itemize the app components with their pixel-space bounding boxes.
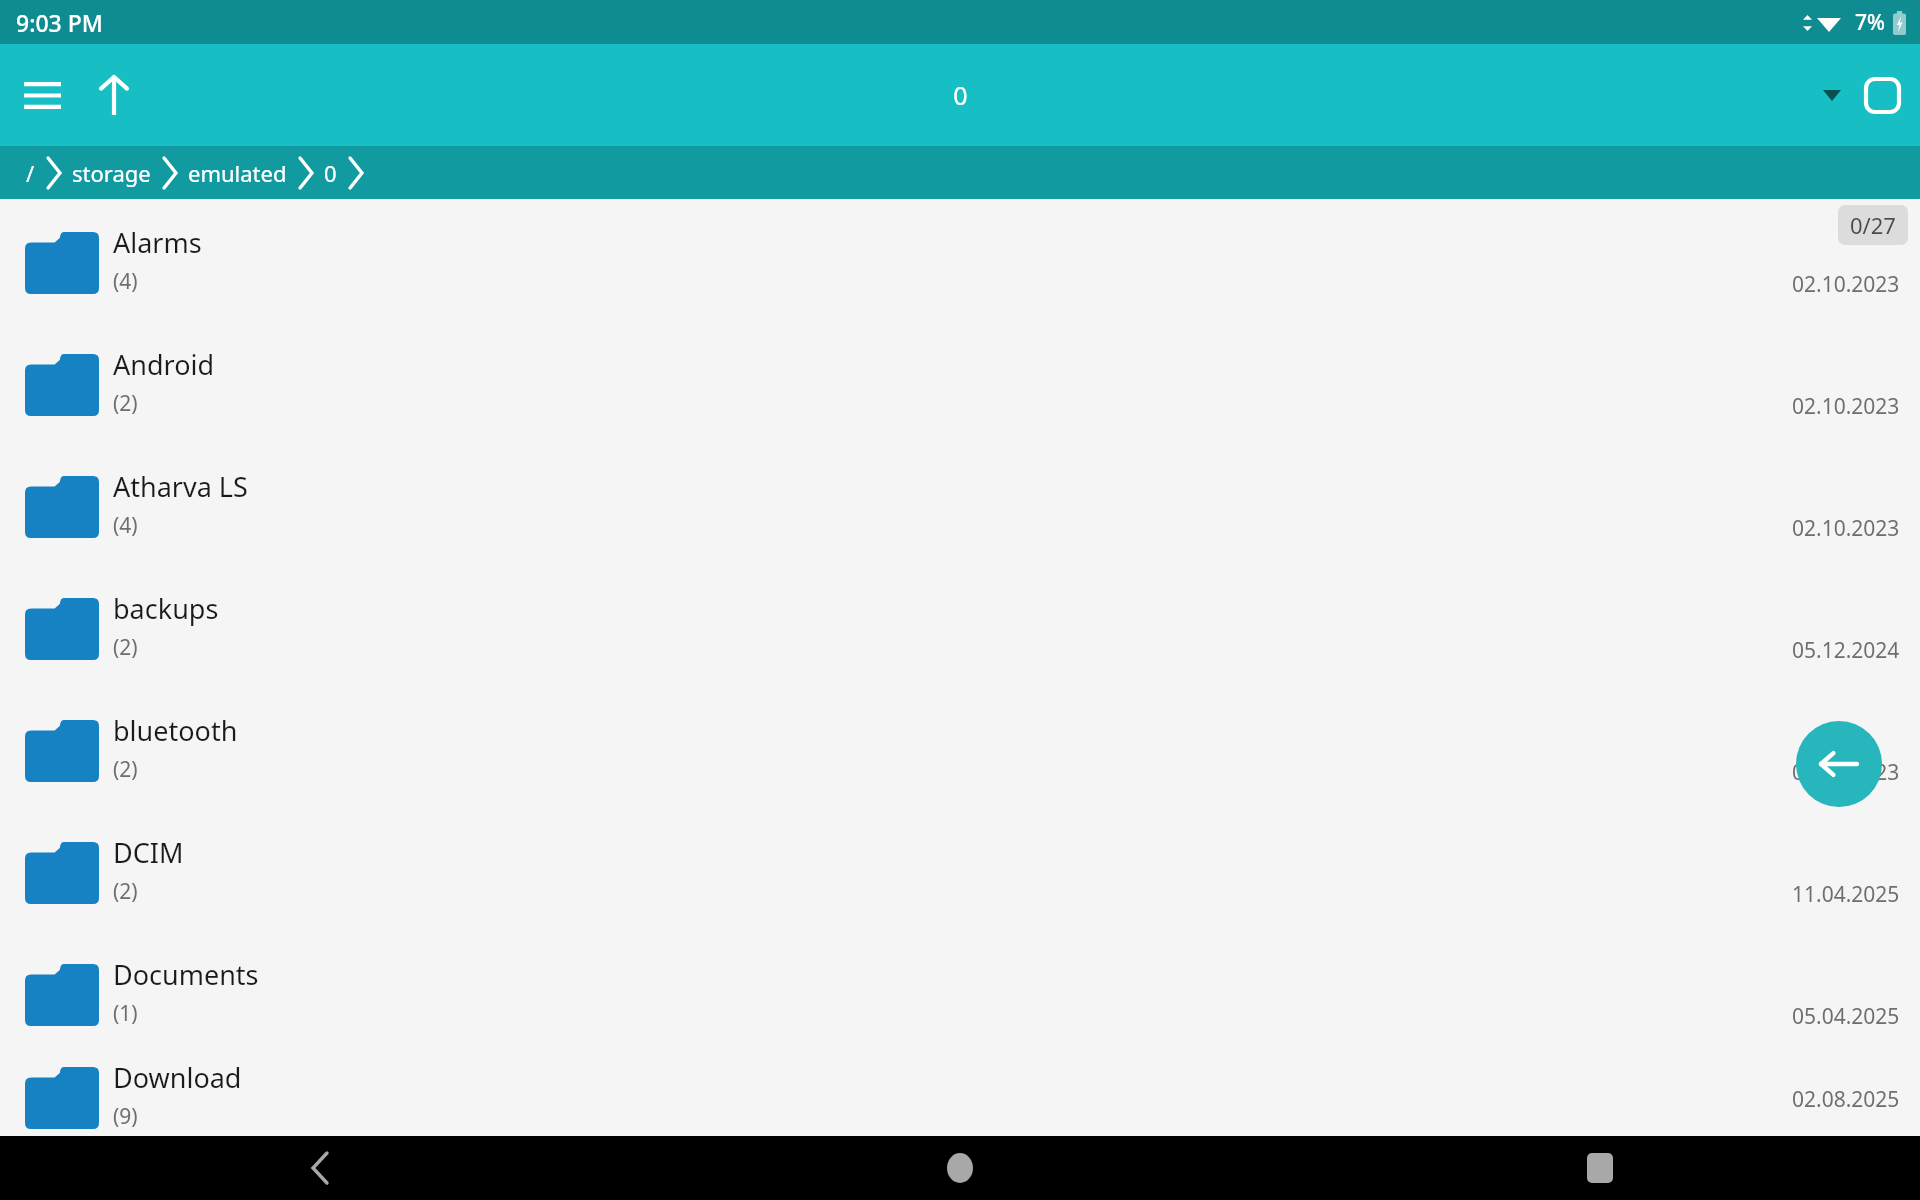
button[interactable]: 0 — [314, 146, 347, 199]
button[interactable]: Go to parent folder — [84, 65, 144, 125]
button[interactable]: / — [16, 146, 45, 199]
button[interactable]: Select all — [1852, 65, 1912, 125]
button[interactable]: Open navigation drawer — [12, 65, 72, 125]
button[interactable]: bluetooth — [0, 687, 1920, 809]
staticText: 7% — [1855, 8, 1885, 37]
button[interactable]: Android — [0, 321, 1920, 443]
staticText: backups — [113, 590, 219, 627]
staticText: 02.10.2023 — [1792, 758, 1900, 787]
button[interactable]: Documents — [0, 931, 1920, 1053]
staticText: 9:03 PM — [16, 7, 103, 38]
staticText: (2) — [113, 877, 138, 906]
staticText: 0/27 — [1850, 210, 1896, 240]
button[interactable]: emulated — [178, 146, 297, 199]
staticText: / — [26, 158, 35, 188]
button[interactable]: backups — [0, 565, 1920, 687]
staticText: Download — [113, 1059, 242, 1096]
staticText: (4) — [113, 267, 138, 296]
staticText: 05.12.2024 — [1792, 636, 1900, 665]
staticText: DCIM — [113, 834, 184, 871]
button[interactable]: Sort options — [1804, 67, 1860, 123]
staticText: storage — [72, 158, 151, 188]
staticText: (2) — [113, 755, 138, 784]
button[interactable]: DCIM — [0, 809, 1920, 931]
staticText: (9) — [113, 1102, 138, 1131]
staticText: 0 — [324, 158, 337, 188]
staticText: Atharva LS — [113, 468, 248, 505]
button[interactable]: Download — [0, 1053, 1920, 1136]
staticText: 02.10.2023 — [1792, 392, 1900, 421]
staticText: Documents — [113, 956, 259, 993]
staticText: Alarms — [113, 224, 202, 261]
button[interactable]: Alarms — [0, 199, 1920, 321]
staticText: 02.10.2023 — [1792, 270, 1900, 299]
button[interactable]: Back — [1796, 721, 1882, 807]
staticText: Android — [113, 346, 215, 383]
staticText: (1) — [113, 999, 138, 1028]
button[interactable]: Home — [640, 1136, 1280, 1200]
staticText: 11.04.2025 — [1792, 880, 1900, 909]
button[interactable]: Recent apps — [1280, 1136, 1920, 1200]
button[interactable]: 0/27 — [1838, 205, 1908, 245]
staticText: emulated — [188, 158, 287, 188]
staticText: (2) — [113, 389, 138, 418]
staticText: 02.10.2023 — [1792, 514, 1900, 543]
staticText: (4) — [113, 511, 138, 540]
staticText: 0 — [953, 78, 968, 112]
staticText: 05.04.2025 — [1792, 1002, 1900, 1031]
button[interactable]: Back — [0, 1136, 640, 1200]
button[interactable]: Atharva LS — [0, 443, 1920, 565]
button[interactable]: storage — [62, 146, 161, 199]
staticText: bluetooth — [113, 712, 238, 749]
staticText: (2) — [113, 633, 138, 662]
staticText: 02.08.2025 — [1792, 1085, 1900, 1114]
